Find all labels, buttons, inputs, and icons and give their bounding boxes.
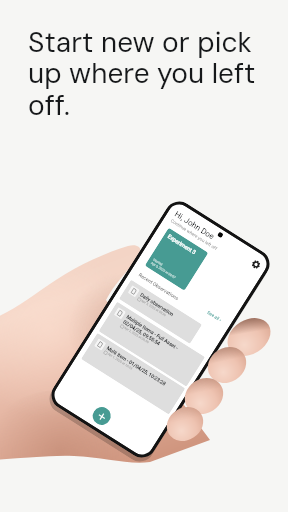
staticText: See all › xyxy=(206,310,222,323)
staticText: Apr 5, 2025 at 04:07 xyxy=(150,261,177,280)
staticText: Experiment 3 xyxy=(167,233,198,256)
button[interactable]: Daily observation xyxy=(119,280,202,344)
button[interactable]: Settings xyxy=(249,257,263,271)
button[interactable]: Multi Item - 01/04/25, 10:23:28 xyxy=(81,333,185,415)
staticText: Started xyxy=(152,258,164,267)
staticText: Recent Observations xyxy=(138,272,181,302)
button[interactable]: See all › xyxy=(205,308,224,324)
staticText: Apr 5, 2025 at 09:36 xyxy=(141,299,167,318)
staticText: 02/04/25, 09:55:54 xyxy=(122,319,162,347)
button[interactable]: New observation xyxy=(89,403,114,428)
staticText: Multiple Items - Full Asset - xyxy=(125,313,180,351)
staticText: Apr 1, 2025 at 10:23 xyxy=(107,352,134,371)
staticText: Continue where you left off xyxy=(170,218,218,251)
button[interactable]: Multiple Items - Full Asset - xyxy=(98,302,205,387)
button[interactable]: Experiment 3 xyxy=(145,228,208,291)
staticText: Apr 2, 2025 at 09:56 xyxy=(123,326,150,345)
staticText: Start new or pick up where you left off. xyxy=(28,24,256,124)
staticText: Hi, John Doe xyxy=(173,210,217,242)
staticText: Daily observation xyxy=(139,291,175,317)
staticText: Multi Item - 01/04/25, 10:23:28 xyxy=(106,345,167,387)
